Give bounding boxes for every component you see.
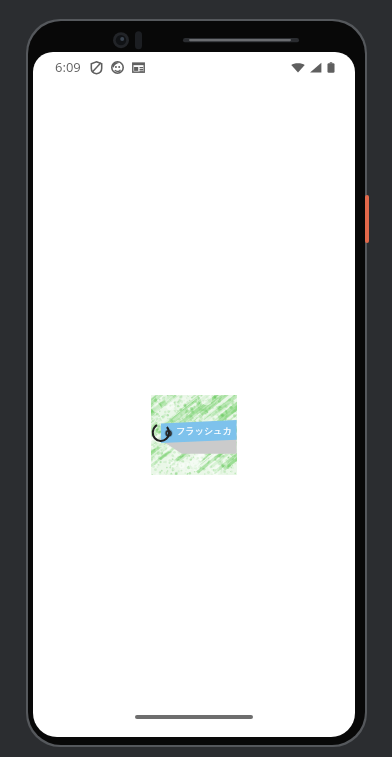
button[interactable]: フラッシュカード (151, 395, 237, 475)
staticText: フラッシュカード (173, 425, 235, 436)
staticText: 6:09 (55, 58, 81, 76)
